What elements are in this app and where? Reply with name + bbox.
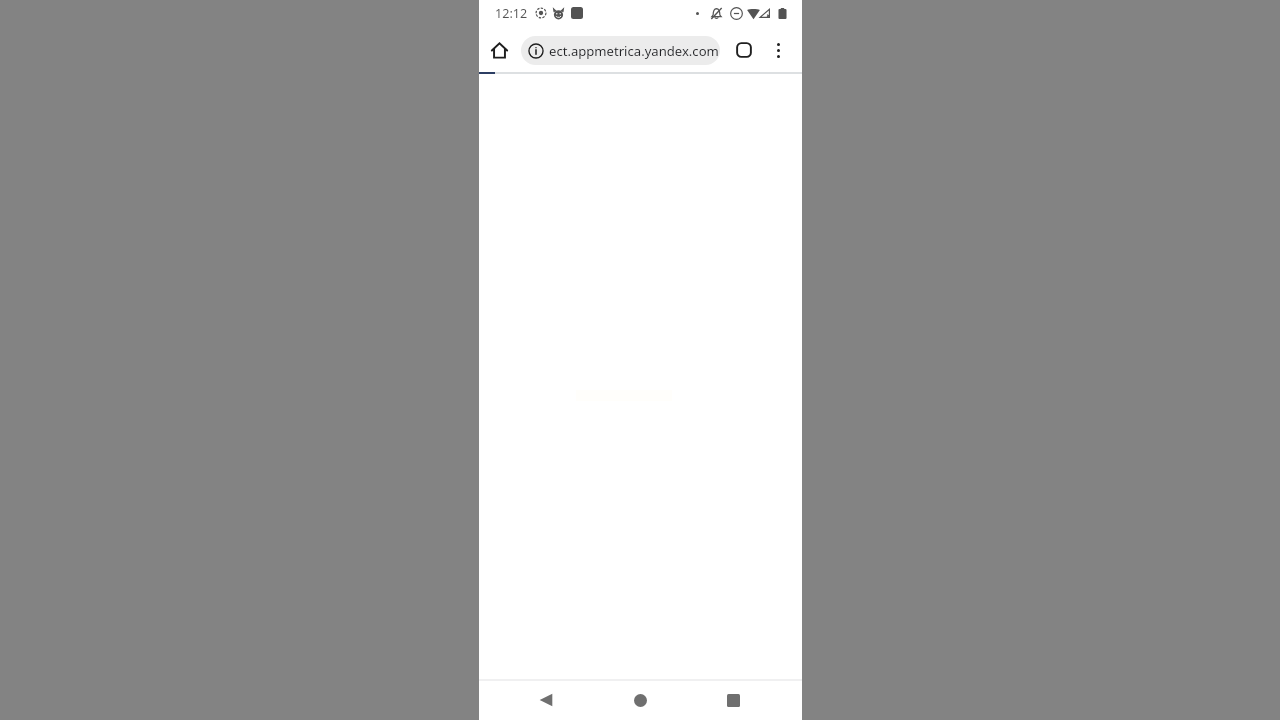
staticText: ect.appmetrica.yandex.com [549,42,719,60]
button[interactable]: Back [522,676,570,720]
button[interactable]: Recent apps [709,676,757,720]
button[interactable]: More options [760,32,796,68]
button[interactable]: ect.appmetrica.yandex.com [521,36,720,65]
staticText: 12:12 [495,5,528,22]
button[interactable]: Home [616,676,664,720]
button[interactable]: Home [481,32,517,68]
button[interactable]: Switch tabs [726,32,762,68]
